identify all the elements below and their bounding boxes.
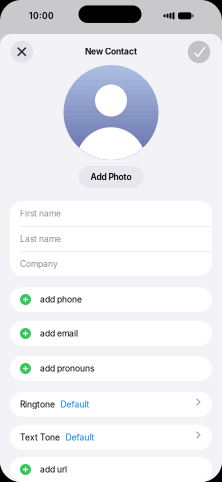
staticText: Company: [20, 259, 58, 269]
staticText: New Contact: [85, 46, 137, 57]
button[interactable]: Last name: [10, 227, 212, 251]
staticText: Last name: [20, 234, 61, 244]
button[interactable]: Company: [10, 252, 212, 276]
button[interactable]: add phone: [10, 287, 212, 312]
staticText: Ringtone: [20, 399, 55, 409]
staticText: Default: [65, 432, 94, 442]
staticText: add email: [40, 328, 78, 339]
staticText: add pronouns: [40, 363, 94, 374]
button[interactable]: First name: [10, 201, 212, 226]
staticText: add url: [40, 464, 67, 475]
button[interactable]: Done: [188, 41, 210, 63]
button[interactable]: Ringtone: [10, 392, 212, 417]
staticText: add phone: [40, 294, 82, 305]
staticText: Text Tone: [20, 432, 60, 442]
staticText: 10:00: [29, 11, 54, 21]
button[interactable]: Cancel: [11, 40, 33, 63]
button[interactable]: add url: [10, 457, 212, 482]
staticText: Add Photo: [90, 172, 131, 182]
staticText: First name: [20, 208, 61, 219]
button[interactable]: Add Photo: [78, 166, 143, 188]
staticText: Default: [60, 399, 89, 409]
button[interactable]: add pronouns: [10, 356, 212, 381]
button[interactable]: add email: [10, 321, 212, 346]
button[interactable]: Text Tone: [10, 425, 212, 450]
